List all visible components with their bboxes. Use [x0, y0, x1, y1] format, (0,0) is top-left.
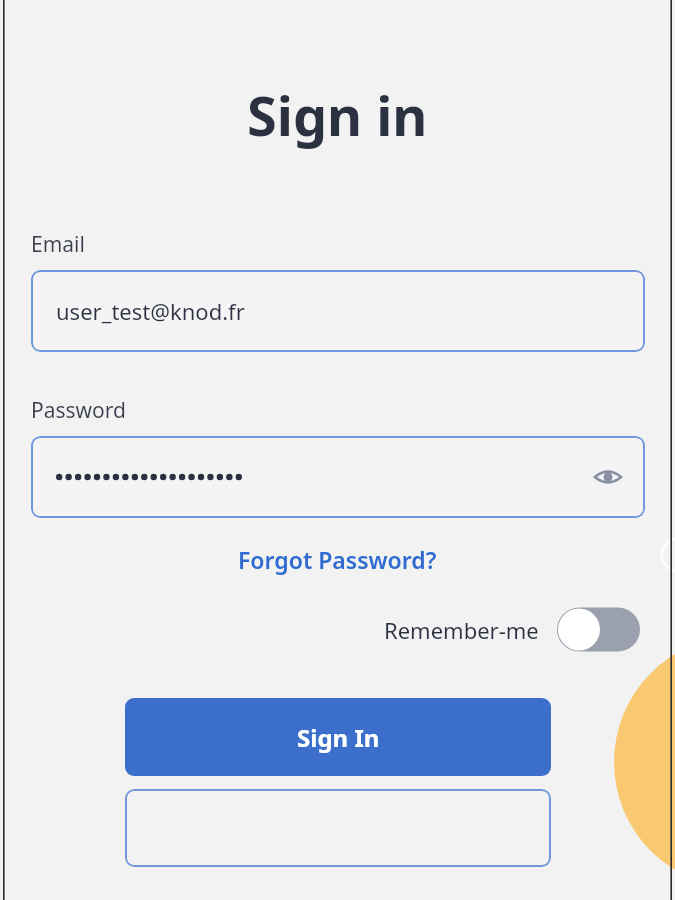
staticText: Password	[31, 396, 126, 425]
button[interactable]: Show password	[31, 436, 645, 518]
staticText: user_test@knod.fr	[56, 296, 245, 326]
button[interactable]: Remember-me	[380, 603, 645, 656]
button[interactable]	[125, 789, 551, 867]
staticText: Email	[31, 230, 85, 259]
staticText: Remember-me	[384, 615, 539, 645]
staticText: Sign In	[297, 721, 380, 754]
staticText: Forgot Password?	[238, 544, 437, 575]
button[interactable]: Sign In	[125, 698, 551, 776]
button[interactable]: Forgot Password?	[230, 540, 445, 579]
button[interactable]: user_test@knod.fr	[31, 270, 645, 352]
staticText: Sign in	[247, 78, 428, 152]
button[interactable]: Remember me toggle	[557, 607, 641, 652]
button[interactable]: Show password	[591, 460, 625, 494]
